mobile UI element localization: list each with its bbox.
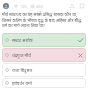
staticText: चंद्रगुप्त मौर्य: [12, 52, 31, 58]
staticText: हर्षवर्धन वर्मा: [12, 80, 32, 86]
button[interactable]: हर्षवर्धन वर्मा: [2, 78, 86, 88]
staticText: सम्राट अशोक: [12, 37, 33, 43]
staticText: मौर्य साम्राज्य का वह सबसे प्रसिद्ध शासक…: [2, 12, 86, 28]
button[interactable]: राजा बिंदुसार: [2, 63, 86, 77]
button[interactable]: Gems: [13, 3, 19, 9]
button[interactable]: Bookmark: [79, 3, 85, 9]
button[interactable]: Profile: [3, 3, 9, 9]
button[interactable]: चंद्रगुप्त मौर्य: [2, 48, 86, 62]
button[interactable]: सम्राट अशोक: [2, 33, 86, 47]
staticText: राजा बिंदुसार: [12, 67, 33, 73]
staticText: 450: [36, 4, 43, 9]
button[interactable]: Streak: [30, 4, 35, 9]
button[interactable]: Alerts: [69, 3, 75, 9]
staticText: 120: [20, 4, 27, 9]
